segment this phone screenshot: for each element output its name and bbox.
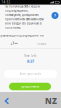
staticText: или введи его вручную в (5, 22, 42, 25)
staticText: Enter your code (19, 72, 41, 76)
button[interactable]: Back (1, 95, 13, 107)
staticText: Продолжить (20, 85, 39, 88)
staticText: поле ниже. (5, 26, 21, 29)
staticText: ? (54, 13, 56, 18)
staticText: 14:32 (1, 0, 10, 4)
staticText: подтверждения. (5, 9, 29, 12)
staticText: Отправка кода подтверждения на (0, 34, 43, 37)
staticText: приложением автоматически (5, 17, 44, 21)
staticText: Россия (36, 42, 46, 45)
button[interactable]: Help (51, 12, 58, 19)
staticText: Пожалуйста, дождись его (5, 13, 39, 17)
button[interactable]: Продолжить (9, 83, 51, 90)
staticText: NZ (45, 96, 57, 106)
button[interactable]: Enter your code (4, 70, 57, 78)
staticText: +7••• (10, 42, 17, 45)
staticText: Time left: (24, 54, 37, 58)
staticText: Ты получишь SMS с кодом (5, 5, 40, 8)
staticText: 8:37 (27, 59, 34, 64)
